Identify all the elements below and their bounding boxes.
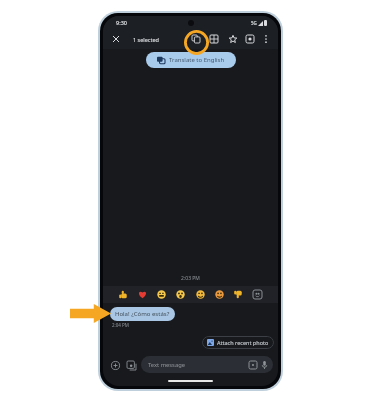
button[interactable]: More options xyxy=(259,32,273,46)
button[interactable]: Wink xyxy=(195,289,206,300)
button[interactable]: Surprised xyxy=(175,289,186,300)
button[interactable]: Add reaction xyxy=(243,32,257,46)
button[interactable]: Blush xyxy=(214,289,225,300)
staticText: Hola! ¿Cómo estás? xyxy=(115,310,170,318)
button[interactable]: More reactions xyxy=(252,289,263,300)
button[interactable]: Heart xyxy=(137,289,148,300)
button[interactable]: Text message xyxy=(141,356,273,373)
button[interactable]: Close xyxy=(109,32,123,46)
button[interactable]: Attach recent photo xyxy=(202,336,274,349)
staticText: 5G xyxy=(251,20,257,26)
staticText: Translate to English xyxy=(169,56,225,64)
staticText: 2:04 PM xyxy=(112,322,129,328)
staticText: 1 selected xyxy=(133,36,159,43)
button[interactable]: Star xyxy=(226,32,240,46)
button[interactable]: Forward xyxy=(207,32,221,46)
button[interactable]: Thumbs down xyxy=(233,289,244,300)
button[interactable]: Translate to English xyxy=(146,52,236,68)
button[interactable]: Copy xyxy=(189,32,203,46)
staticText: Attach recent photo xyxy=(217,339,269,346)
button[interactable]: Gallery xyxy=(124,358,138,372)
button[interactable]: Hola! ¿Cómo estás? xyxy=(110,307,175,321)
button[interactable]: Add xyxy=(108,358,122,372)
button[interactable]: Laughing xyxy=(156,289,167,300)
staticText: 9:30 xyxy=(116,19,127,26)
button[interactable]: Thumbs up xyxy=(118,289,129,300)
staticText: 2:03 PM xyxy=(103,275,278,282)
staticText: Text message xyxy=(148,361,185,369)
